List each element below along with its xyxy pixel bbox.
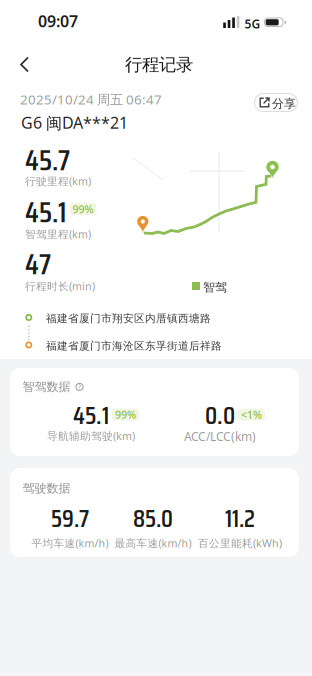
staticText: 45.1: [73, 395, 109, 435]
staticText: 分享: [272, 96, 296, 111]
staticText: 45.1: [25, 189, 66, 235]
staticText: <1%: [241, 407, 262, 422]
staticText: 福建省厦门市海沧区东孚街道后祥路: [46, 339, 222, 353]
staticText: 2025/10/24 周五 06:47: [20, 90, 162, 108]
staticText: 45.7: [25, 137, 70, 183]
staticText: G6 闽DA***21: [21, 112, 128, 133]
staticText: 行程时长(min): [25, 279, 95, 293]
button[interactable]: 分享: [254, 93, 298, 112]
staticText: 行驶里程(km): [25, 174, 91, 188]
staticText: 09:07: [38, 10, 78, 32]
staticText: 11.2: [225, 499, 255, 538]
staticText: 5G: [244, 16, 260, 32]
button[interactable]: Back: [7, 53, 43, 76]
staticText: 行程记录: [125, 54, 193, 75]
staticText: 0.0: [205, 395, 235, 435]
staticText: 最高车速(km/h): [114, 536, 191, 550]
staticText: 福建省厦门市翔安区内厝镇西塘路: [46, 312, 211, 325]
staticText: 85.0: [133, 499, 173, 538]
staticText: 99%: [115, 407, 136, 422]
staticText: ACC/LCC(km): [184, 428, 256, 444]
staticText: 导航辅助驾驶(km): [47, 429, 135, 443]
staticText: 平均车速(km/h): [31, 536, 108, 550]
staticText: 驾驶数据: [22, 481, 70, 496]
staticText: 智驾里程(km): [25, 227, 91, 241]
staticText: ?: [78, 382, 81, 391]
staticText: 百公里能耗(kWh): [198, 536, 282, 550]
staticText: 47: [25, 241, 51, 287]
staticText: 59.7: [51, 499, 89, 538]
staticText: 99%: [73, 202, 94, 216]
staticText: 智驾数据: [22, 379, 70, 394]
staticText: 智驾: [203, 280, 227, 295]
